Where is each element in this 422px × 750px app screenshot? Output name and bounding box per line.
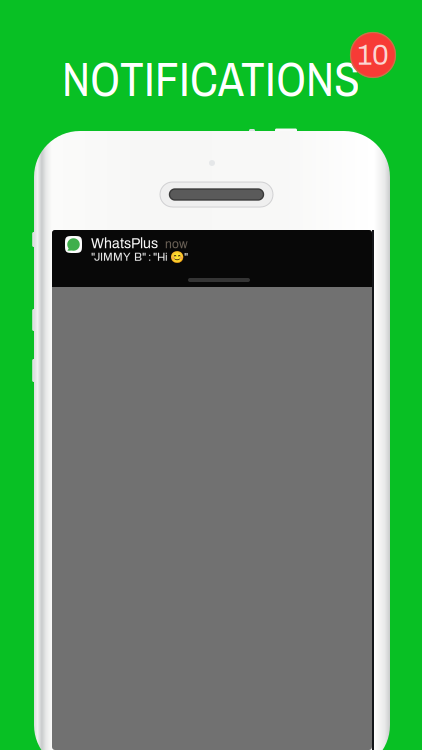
staticText: "JIMMY B" : "Hi 😊"	[91, 250, 188, 264]
staticText: NOTIFICATIONS	[62, 47, 360, 111]
staticText: 10	[357, 39, 389, 71]
staticText: WhatsPlus	[91, 236, 158, 251]
button[interactable]: WhatsPlus	[52, 230, 372, 287]
staticText: now	[165, 238, 188, 251]
